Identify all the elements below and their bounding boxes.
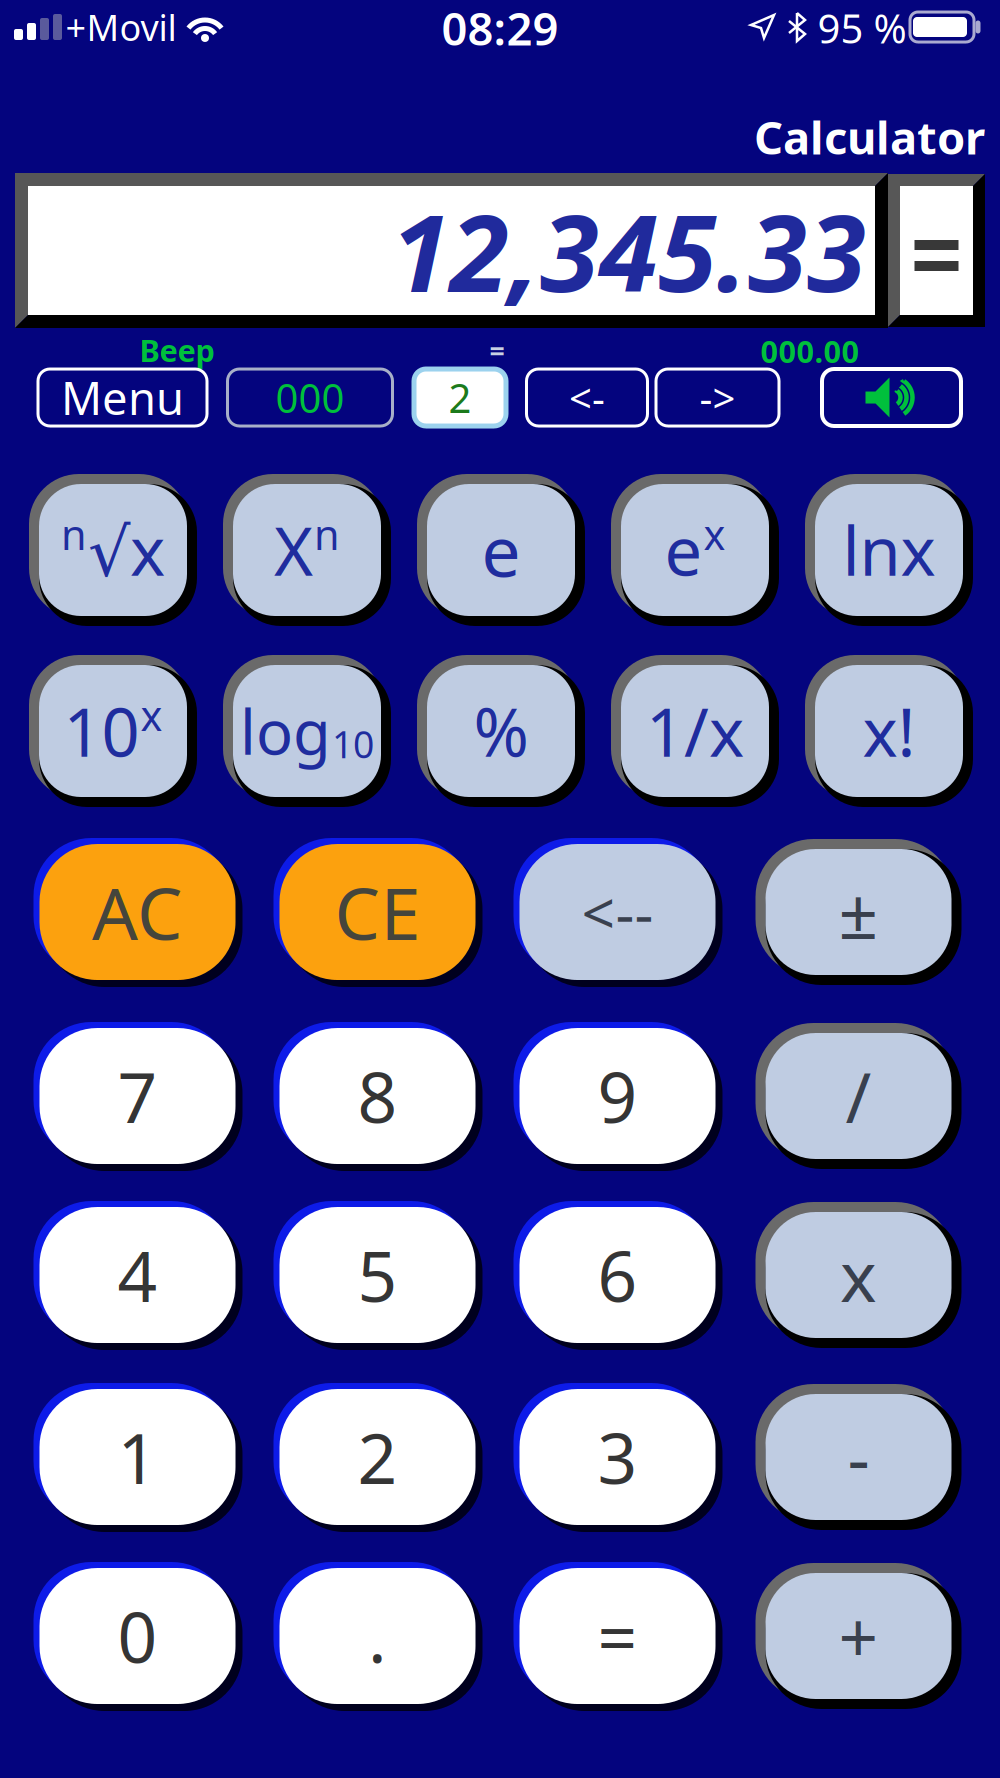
staticText: x bbox=[703, 507, 725, 561]
button[interactable]: = bbox=[519, 1568, 715, 1704]
button[interactable]: 2 bbox=[279, 1389, 475, 1525]
staticText: 08:29 bbox=[441, 0, 558, 58]
staticText: e bbox=[481, 504, 520, 596]
button[interactable]: X bbox=[223, 474, 391, 626]
button[interactable]: e bbox=[417, 474, 585, 626]
button[interactable]: 2 bbox=[414, 369, 506, 426]
button[interactable]: - bbox=[755, 1384, 961, 1530]
staticText: 000.00 bbox=[760, 331, 859, 371]
staticText: CE bbox=[334, 864, 420, 960]
button[interactable]: 0 bbox=[39, 1568, 235, 1704]
staticText: √x bbox=[88, 506, 165, 594]
staticText: - bbox=[847, 1411, 869, 1503]
button[interactable]: Previous bbox=[526, 369, 647, 426]
staticText: = bbox=[597, 1590, 637, 1682]
staticText: 10 bbox=[332, 719, 374, 769]
button[interactable]: 8 bbox=[279, 1028, 475, 1164]
staticText: +Movil bbox=[65, 3, 176, 51]
button[interactable]: 1/x bbox=[611, 655, 779, 807]
button[interactable]: n bbox=[29, 474, 197, 626]
staticText: e bbox=[664, 506, 702, 594]
staticText: + bbox=[838, 1590, 878, 1682]
button[interactable]: x! bbox=[805, 655, 973, 807]
staticText: 10 bbox=[63, 687, 139, 775]
staticText: log bbox=[240, 690, 331, 772]
button[interactable]: AC bbox=[39, 844, 235, 980]
staticText: = bbox=[489, 333, 504, 369]
button[interactable]: log bbox=[223, 655, 391, 807]
staticText: 2 bbox=[448, 371, 471, 424]
button[interactable]: lnx bbox=[805, 474, 973, 626]
button[interactable]: Equals bbox=[888, 174, 985, 327]
button[interactable]: 6 bbox=[519, 1207, 715, 1343]
staticText: 7 bbox=[117, 1050, 157, 1142]
staticText: Calculator bbox=[754, 107, 985, 167]
staticText: Beep bbox=[139, 330, 214, 370]
staticText: 2 bbox=[357, 1411, 397, 1503]
button[interactable]: 5 bbox=[279, 1207, 475, 1343]
button[interactable]: 10 bbox=[29, 655, 197, 807]
button[interactable]: CE bbox=[279, 844, 475, 980]
button[interactable]: Menu bbox=[38, 369, 207, 426]
staticText: x bbox=[840, 1229, 877, 1321]
staticText: 0 bbox=[117, 1590, 157, 1682]
staticText: 6 bbox=[597, 1229, 637, 1321]
staticText: % bbox=[473, 687, 528, 775]
staticText: ± bbox=[838, 866, 878, 958]
button[interactable]: 1 bbox=[39, 1389, 235, 1525]
staticText: 8 bbox=[357, 1050, 397, 1142]
button[interactable]: Sound bbox=[822, 369, 961, 426]
button[interactable]: % bbox=[417, 655, 585, 807]
button[interactable]: 9 bbox=[519, 1028, 715, 1164]
staticText: 4 bbox=[117, 1229, 157, 1321]
button[interactable]: 3 bbox=[519, 1389, 715, 1525]
staticText: x! bbox=[862, 687, 915, 775]
button[interactable]: ± bbox=[755, 839, 961, 985]
staticText: 9 bbox=[597, 1050, 637, 1142]
staticText: 5 bbox=[357, 1229, 397, 1321]
staticText: AC bbox=[92, 864, 183, 960]
staticText: Menu bbox=[61, 367, 184, 428]
staticText: 000 bbox=[275, 371, 344, 424]
staticText: -> bbox=[699, 371, 735, 424]
button[interactable]: . bbox=[279, 1568, 475, 1704]
staticText: 12,345.33 bbox=[391, 180, 866, 321]
button[interactable]: e bbox=[611, 474, 779, 626]
staticText: 1 bbox=[117, 1411, 157, 1503]
button[interactable]: <-- bbox=[519, 844, 715, 980]
staticText: <-- bbox=[581, 873, 653, 951]
button[interactable]: 000 bbox=[227, 369, 392, 426]
staticText: / bbox=[845, 1050, 871, 1142]
staticText: lnx bbox=[842, 506, 935, 594]
button[interactable]: 7 bbox=[39, 1028, 235, 1164]
button[interactable]: + bbox=[755, 1563, 961, 1709]
button[interactable]: 4 bbox=[39, 1207, 235, 1343]
staticText: . bbox=[368, 1590, 387, 1682]
staticText: <- bbox=[569, 371, 605, 424]
staticText: 1/x bbox=[646, 687, 744, 775]
staticText: n bbox=[314, 507, 340, 561]
staticText: n bbox=[61, 507, 87, 561]
button[interactable]: x bbox=[755, 1202, 961, 1348]
staticText: 3 bbox=[597, 1411, 637, 1503]
staticText: 95 % bbox=[817, 1, 906, 54]
staticText: x bbox=[140, 688, 162, 742]
button[interactable]: Next bbox=[656, 369, 779, 426]
button[interactable]: / bbox=[755, 1023, 961, 1169]
staticText: X bbox=[274, 506, 313, 594]
